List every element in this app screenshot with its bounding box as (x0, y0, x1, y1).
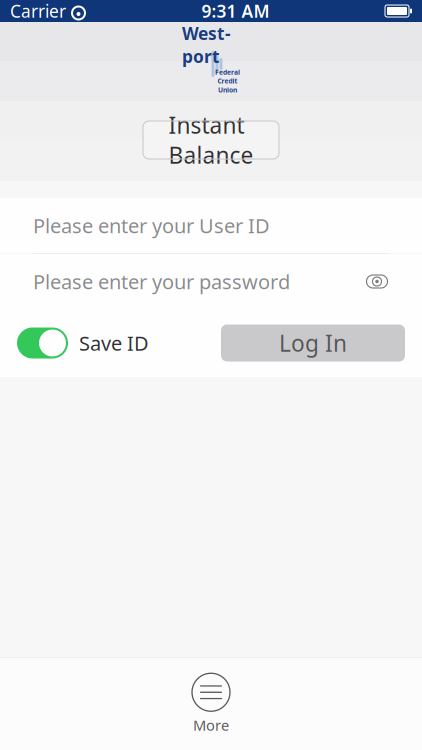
button[interactable]: Instant Balance (143, 121, 279, 159)
staticText: Federal (215, 68, 240, 77)
staticText: Westport (182, 22, 231, 68)
staticText: Union (218, 85, 237, 94)
staticText: Please enter your password (33, 268, 290, 295)
staticText: Credit (217, 77, 237, 85)
staticText: 9:31 AM (201, 0, 269, 22)
staticText: Instant Balance (168, 110, 253, 170)
button[interactable]: Please enter your User ID (0, 198, 422, 253)
staticText: Log In (279, 328, 347, 358)
staticText: Please enter your User ID (33, 212, 270, 239)
staticText: Save ID (79, 330, 149, 356)
button[interactable]: Please enter your password (0, 254, 422, 309)
staticText: More (193, 715, 229, 735)
button[interactable]: More (0, 658, 422, 750)
staticText: Carrier (10, 0, 66, 22)
button[interactable]: Save ID (17, 327, 149, 358)
button[interactable]: Log In (221, 324, 405, 361)
